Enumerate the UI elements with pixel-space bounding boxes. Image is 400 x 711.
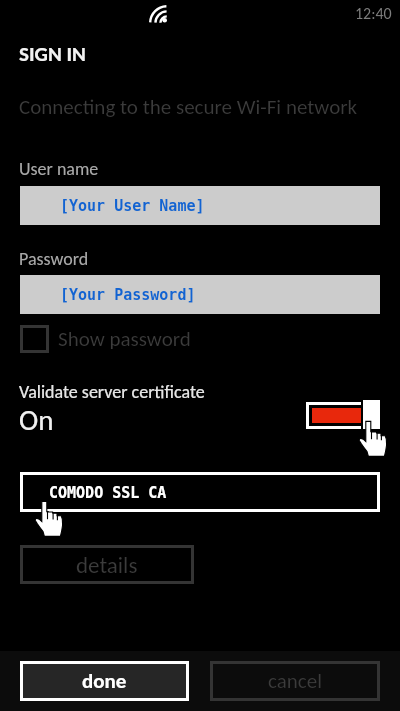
button[interactable]: COMODO SSL CA (20, 472, 380, 512)
button[interactable]: Validate server certificate, On (306, 402, 361, 429)
staticText: Validate server certificate (19, 381, 205, 403)
staticText: Show password (58, 326, 191, 352)
staticText: details (76, 551, 138, 579)
staticText: 12:40 (355, 4, 392, 24)
button[interactable]: [Your User Name] (20, 186, 380, 225)
staticText: Password (19, 248, 89, 270)
staticText: User name (19, 158, 99, 180)
staticText: COMODO SSL CA (49, 484, 167, 501)
staticText: cancel (268, 668, 322, 694)
staticText: done (82, 668, 127, 694)
staticText: Connecting to the secure Wi-Fi network (19, 94, 358, 120)
staticText: SIGN IN (19, 41, 86, 67)
button[interactable]: details (20, 545, 194, 584)
button[interactable]: cancel (210, 661, 380, 701)
staticText: [Your Password] (60, 286, 196, 303)
staticText: [Your User Name] (60, 197, 205, 214)
button[interactable]: Show password (20, 325, 190, 354)
button[interactable]: done (23, 664, 186, 698)
button[interactable]: [Your Password] (20, 275, 380, 314)
staticText: On (19, 402, 54, 437)
